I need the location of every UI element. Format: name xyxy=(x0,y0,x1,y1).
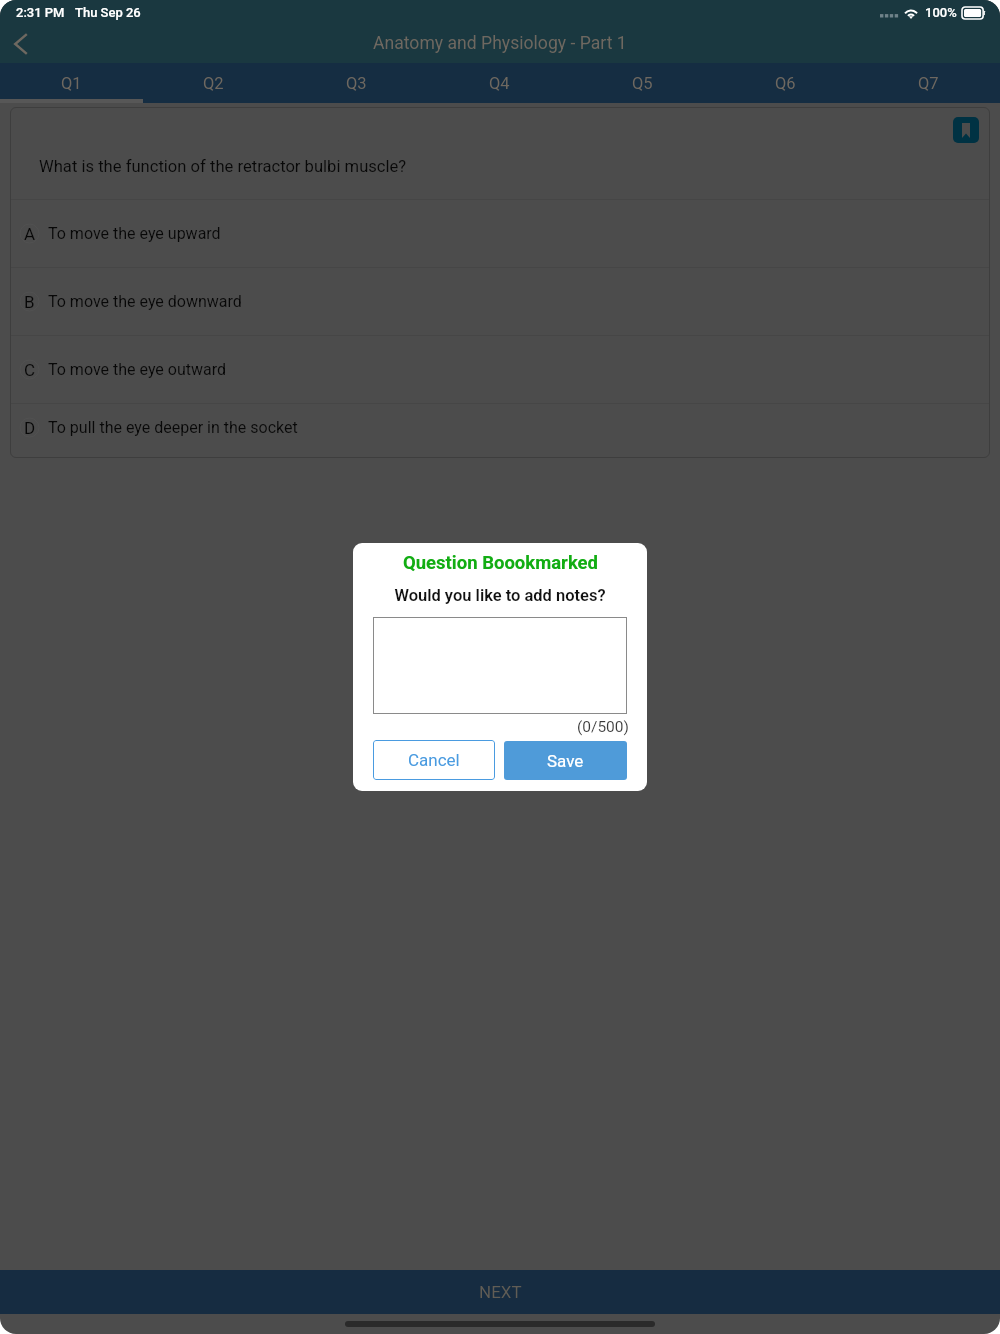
button[interactable]: Save xyxy=(504,741,627,780)
staticText: To move the eye outward xyxy=(48,360,227,379)
staticText: Thu Sep 26 xyxy=(75,5,141,20)
staticText: (0/500) xyxy=(577,718,629,736)
staticText: D xyxy=(24,418,36,437)
button[interactable]: Q3 xyxy=(285,63,428,103)
staticText: Q2 xyxy=(203,74,224,93)
staticText: Q3 xyxy=(346,74,367,93)
button[interactable]: Q4 xyxy=(428,63,571,103)
staticText: Save xyxy=(547,751,584,771)
staticText: Q5 xyxy=(632,74,653,93)
staticText: Q6 xyxy=(775,74,796,93)
staticText: Would you like to add notes? xyxy=(394,586,606,605)
staticText: C xyxy=(24,360,36,379)
staticText: A xyxy=(24,224,36,243)
button[interactable]: Cancel xyxy=(373,740,495,780)
button[interactable]: Q6 xyxy=(714,63,857,103)
staticText: B xyxy=(24,292,35,311)
staticText: To move the eye downward xyxy=(48,292,242,311)
staticText: Q4 xyxy=(489,74,510,93)
button[interactable]: B xyxy=(10,268,990,335)
button[interactable]: A xyxy=(10,200,990,267)
button[interactable]: Q7 xyxy=(857,63,1000,103)
button[interactable]: NEXT xyxy=(0,1270,1000,1314)
staticText: 2:31 PM xyxy=(16,5,65,20)
button[interactable]: C xyxy=(10,336,990,403)
button[interactable]: Q2 xyxy=(142,63,285,103)
staticText: NEXT xyxy=(479,1282,522,1302)
staticText: Anatomy and Physiology - Part 1 xyxy=(373,33,627,54)
button[interactable]: Q5 xyxy=(571,63,714,103)
staticText: What is the function of the retractor bu… xyxy=(39,157,407,176)
staticText: Cancel xyxy=(408,750,460,770)
button[interactable]: Q1 xyxy=(0,63,142,103)
staticText: To move the eye upward xyxy=(48,224,221,243)
staticText: Q7 xyxy=(918,74,939,93)
button[interactable]: D xyxy=(10,404,990,458)
staticText: Question Boookmarked xyxy=(403,552,598,574)
button[interactable] xyxy=(373,617,627,714)
staticText: 100% xyxy=(925,5,957,20)
button[interactable]: Bookmark xyxy=(953,117,979,143)
staticText: Q1 xyxy=(61,74,82,93)
staticText: To pull the eye deeper in the socket xyxy=(48,418,298,437)
button[interactable]: Back xyxy=(0,24,42,63)
